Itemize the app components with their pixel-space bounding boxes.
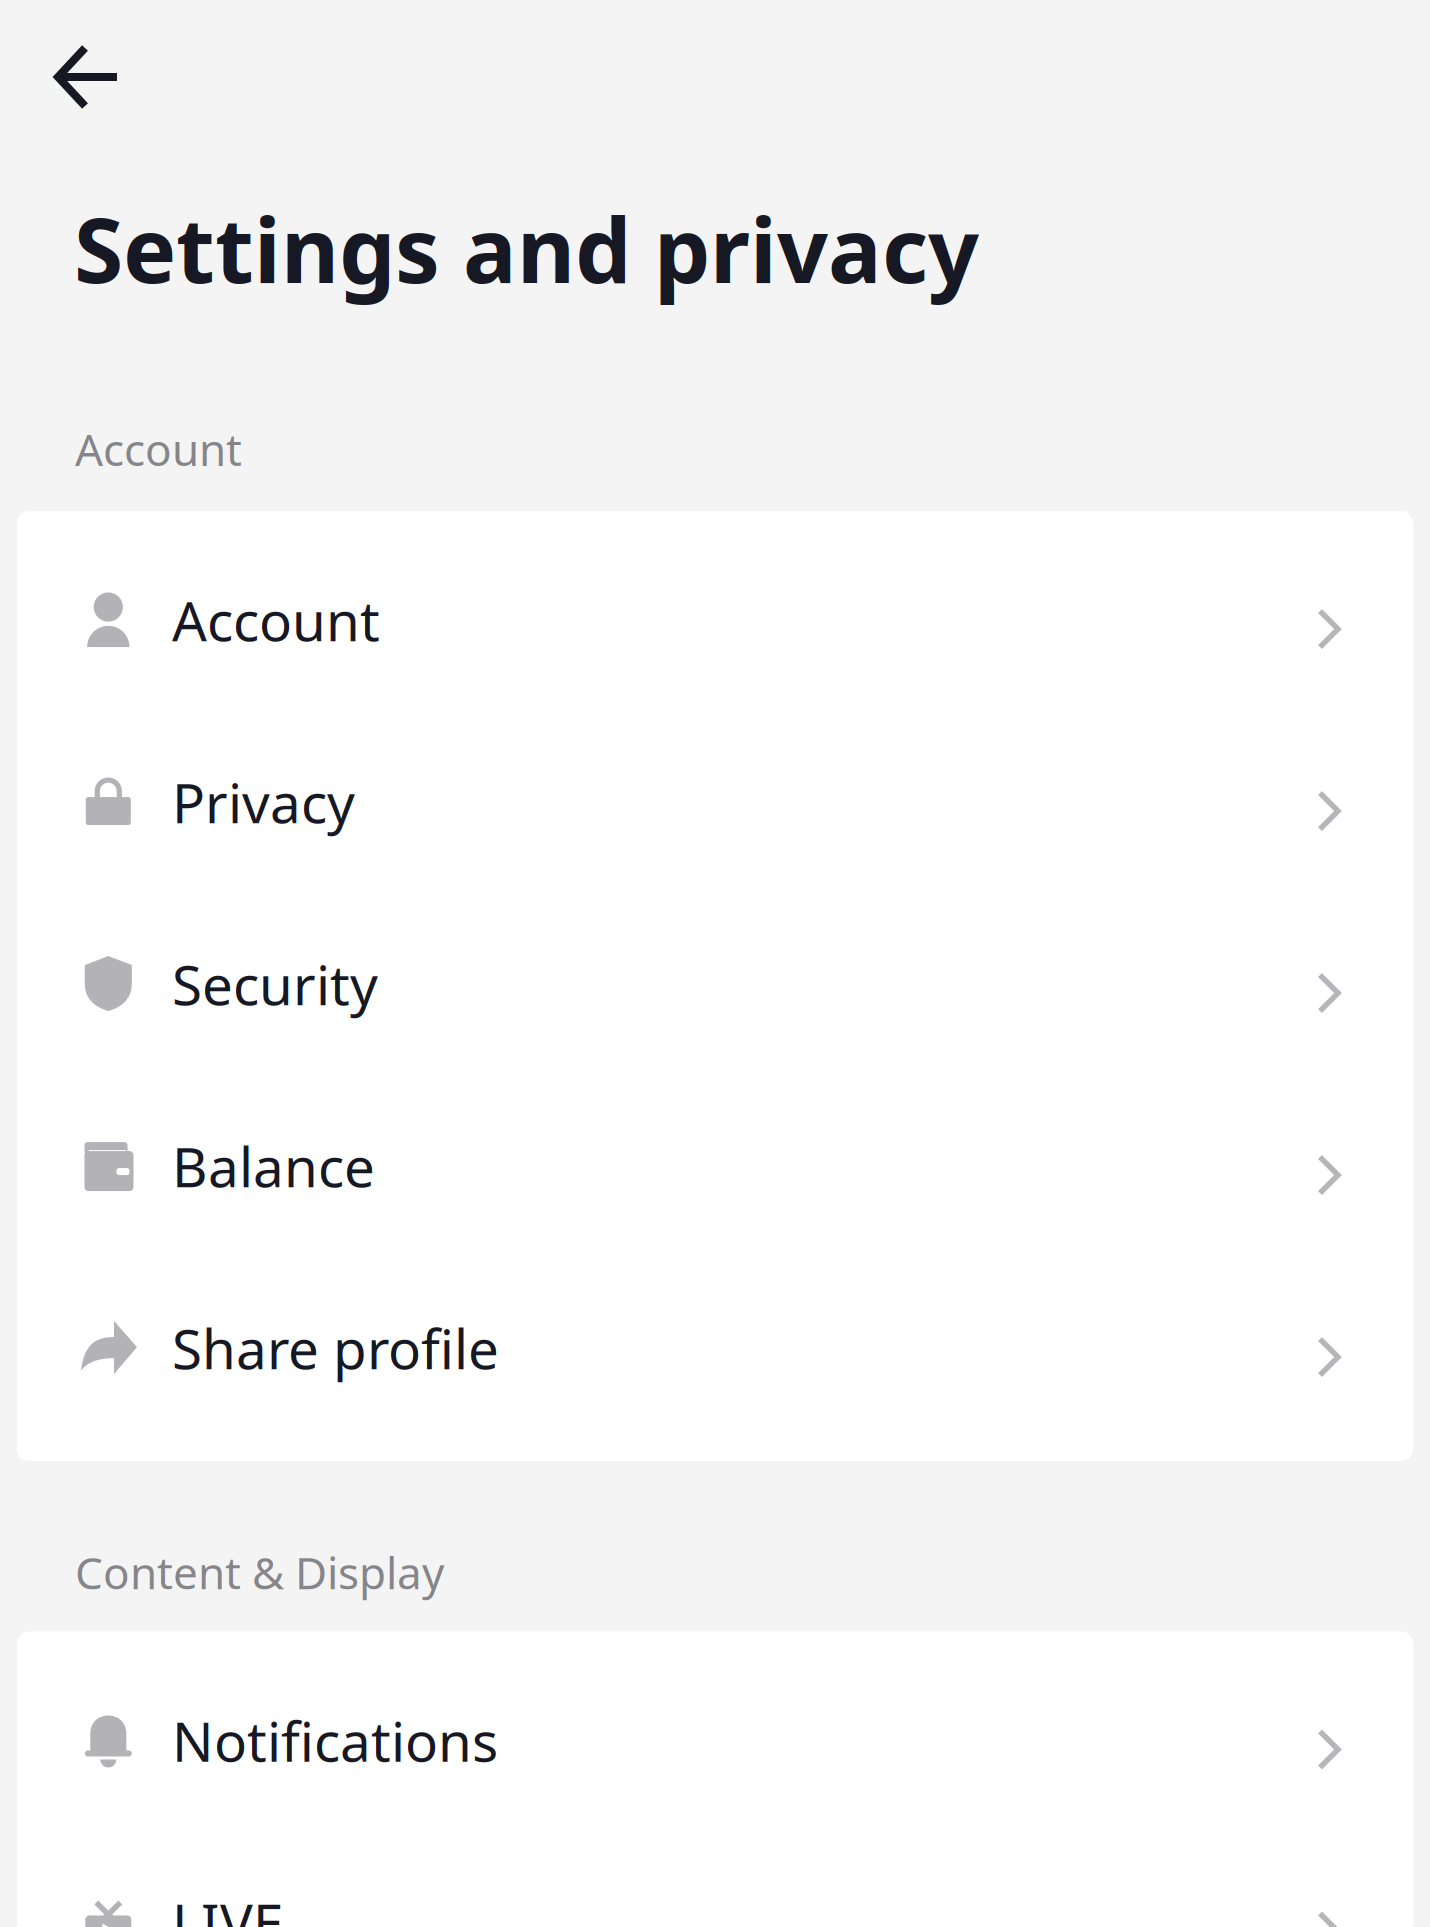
staticText: Content & Display	[75, 1543, 444, 1601]
staticText: Privacy	[172, 766, 355, 838]
staticText: Settings and privacy	[74, 189, 979, 308]
staticText: Balance	[172, 1130, 375, 1202]
staticText: Share profile	[172, 1312, 499, 1384]
button[interactable]: Share profile	[17, 1257, 1413, 1439]
staticText: Account	[172, 584, 380, 656]
staticText: Account	[75, 420, 242, 478]
button[interactable]: Privacy	[17, 711, 1413, 893]
button[interactable]: Notifications	[17, 1649, 1413, 1831]
button[interactable]: Balance	[17, 1075, 1413, 1257]
button[interactable]: Security	[17, 893, 1413, 1075]
button[interactable]: Account	[17, 529, 1413, 711]
button[interactable]: LIVE	[17, 1831, 1413, 1927]
staticText: Notifications	[172, 1704, 498, 1777]
staticText: LIVE	[172, 1886, 283, 1927]
button[interactable]: Back	[0, 0, 161, 144]
staticText: Security	[172, 948, 378, 1020]
